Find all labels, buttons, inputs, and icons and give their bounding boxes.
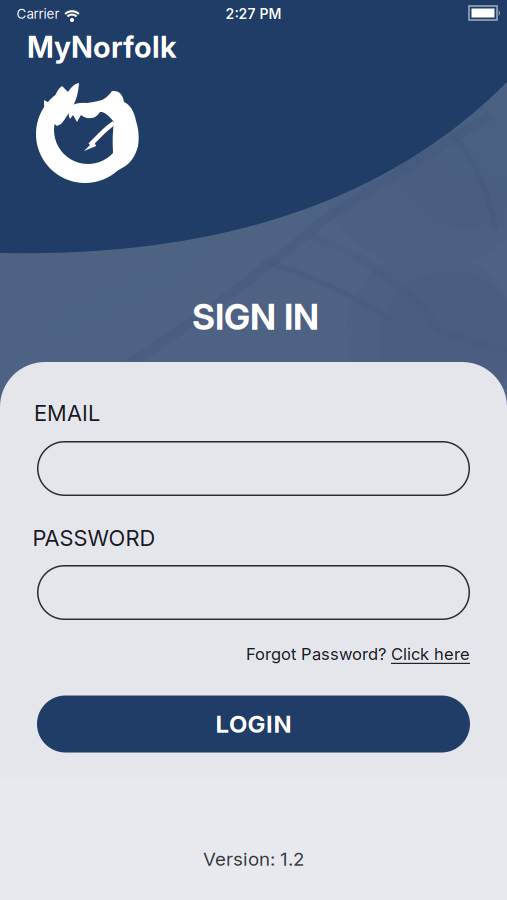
staticText: Carrier: [16, 6, 59, 22]
button[interactable]: [37, 441, 470, 496]
staticText: Version: 1.2: [203, 848, 304, 870]
staticText: 2:27 PM: [225, 5, 281, 22]
button[interactable]: [37, 565, 470, 620]
staticText: PASSWORD: [32, 525, 155, 551]
staticText: LOGIN: [215, 709, 291, 738]
staticText: EMAIL: [34, 400, 100, 426]
button[interactable]: LOGIN: [37, 695, 470, 752]
staticText: SIGN IN: [192, 296, 319, 338]
button[interactable]: Forgot Password? Click here: [246, 644, 470, 664]
staticText: Forgot Password? Click here: [246, 644, 470, 664]
staticText: MyNorfolk: [27, 29, 177, 65]
